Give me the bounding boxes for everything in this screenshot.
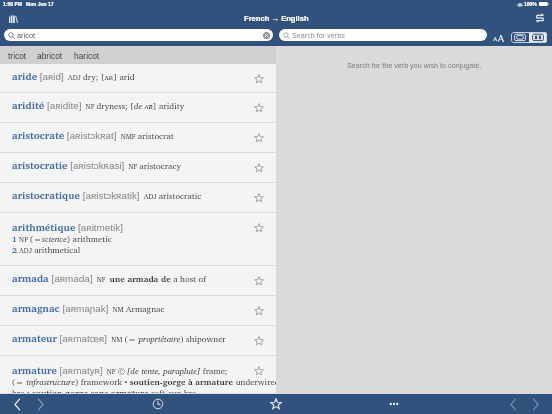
staticText: ​aristocratie [aʀistɔkʀasi] NF aristocra… — [12, 157, 181, 174]
staticText: ​aridité [aʀidite] NF dryness; [de ʌʀ] a… — [12, 97, 185, 114]
button[interactable]: History — [152, 398, 164, 410]
staticText: ​arithmétique [aʀitmetik] — [12, 219, 123, 236]
staticText: ​armature [aʀmatyʀ] NF Ⓒ [de tente, para… — [12, 362, 228, 379]
button[interactable]: Dictionaries — [9, 15, 18, 23]
staticText: haricot — [74, 51, 100, 60]
button[interactable]: Next page — [529, 398, 542, 411]
button[interactable]: ​arithmétique [aʀitmetik] — [0, 213, 276, 266]
staticText: ​aride [aʀid] ADJ dry; [ʌʀ] arid — [12, 68, 135, 85]
button[interactable]: More options — [388, 398, 400, 410]
staticText: A — [497, 29, 505, 42]
button[interactable]: ​aride [aʀid] ADJ dry; [ʌʀ] arid — [0, 64, 276, 93]
staticText: tricot — [8, 51, 27, 60]
staticText: ​1 NF (=science) arithmetic — [12, 230, 112, 247]
staticText: ​2 ADJ arithmetical — [12, 241, 81, 258]
button[interactable]: Single pane — [511, 32, 529, 43]
staticText: Search for verbs — [292, 31, 345, 39]
button[interactable]: Add to favourites — [254, 163, 264, 173]
button[interactable]: ​armada [aʀmada] NF une armada de a host… — [0, 266, 276, 296]
staticText: ​aristocratique [aʀistɔkʀatik] ADJ arist… — [12, 187, 202, 204]
button[interactable]: ​armagnac [aʀmaɲak] NM Armagnac — [0, 296, 276, 326]
button[interactable]: ​aridité [aʀidite] NF dryness; [de ʌʀ] a… — [0, 93, 276, 123]
button[interactable]: aricot — [4, 29, 273, 41]
staticText: 100% — [524, 1, 537, 7]
staticText: A — [493, 33, 498, 43]
button[interactable]: Text size — [492, 30, 507, 43]
button[interactable]: Add to favourites — [254, 103, 264, 113]
button[interactable]: Add to favourites — [254, 193, 264, 203]
button[interactable]: Split pane — [529, 32, 547, 43]
button[interactable]: ​aristocratie [aʀistɔkʀasi] NF aristocra… — [0, 153, 276, 183]
button[interactable]: Favourites — [270, 398, 282, 410]
staticText: ​armateur [aʀmatœʀ] NM (= propriétaire) … — [12, 330, 226, 347]
staticText: abricot — [37, 51, 63, 60]
button[interactable]: Add to favourites — [254, 306, 264, 316]
button[interactable]: Clear search — [263, 32, 270, 39]
button[interactable]: Add to favourites — [254, 133, 264, 143]
staticText: ​armagnac [aʀmaɲak] NM Armagnac — [12, 300, 165, 317]
button[interactable]: Add to favourites — [254, 366, 264, 376]
staticText: French → English — [244, 14, 309, 22]
button[interactable]: Swap languages — [536, 14, 544, 22]
staticText: ​aristocrate [aʀistɔkʀat] NMF aristocrat — [12, 127, 174, 144]
button[interactable]: Search for verbs — [279, 29, 487, 41]
button[interactable]: Add to favourites — [254, 276, 264, 286]
button[interactable]: Back — [11, 398, 24, 411]
button[interactable]: haricot — [74, 51, 100, 60]
button[interactable]: ​armature [aʀmatyʀ] NF Ⓒ [de tente, para… — [0, 356, 276, 394]
button[interactable]: abricot — [37, 51, 63, 60]
button[interactable]: Add to favourites — [254, 223, 264, 233]
button[interactable]: ​aristocratique [aʀistɔkʀatik] ADJ arist… — [0, 183, 276, 213]
button[interactable]: ​armateur [aʀmatœʀ] NM (= propriétaire) … — [0, 326, 276, 356]
staticText: Search for the verb you wish to conjugat… — [347, 61, 482, 69]
button[interactable]: ​aristocrate [aʀistɔkʀat] NMF aristocrat — [0, 123, 276, 153]
staticText: ​(= infrastructure) framework • soutien-… — [12, 373, 276, 390]
button[interactable]: Add to favourites — [254, 74, 264, 84]
staticText: aricot — [17, 31, 36, 39]
button[interactable]: Add to favourites — [254, 336, 264, 346]
staticText: ​armada [aʀmada] NF une armada de a host… — [12, 270, 207, 287]
staticText: 1:56 PM Mon Jun 17 — [3, 1, 54, 7]
button[interactable]: Previous page — [507, 398, 520, 411]
button[interactable]: tricot — [8, 51, 27, 60]
staticText: ​bra • soutien-gorge sans armature soft-… — [12, 384, 197, 394]
button[interactable]: Forward — [34, 398, 47, 411]
